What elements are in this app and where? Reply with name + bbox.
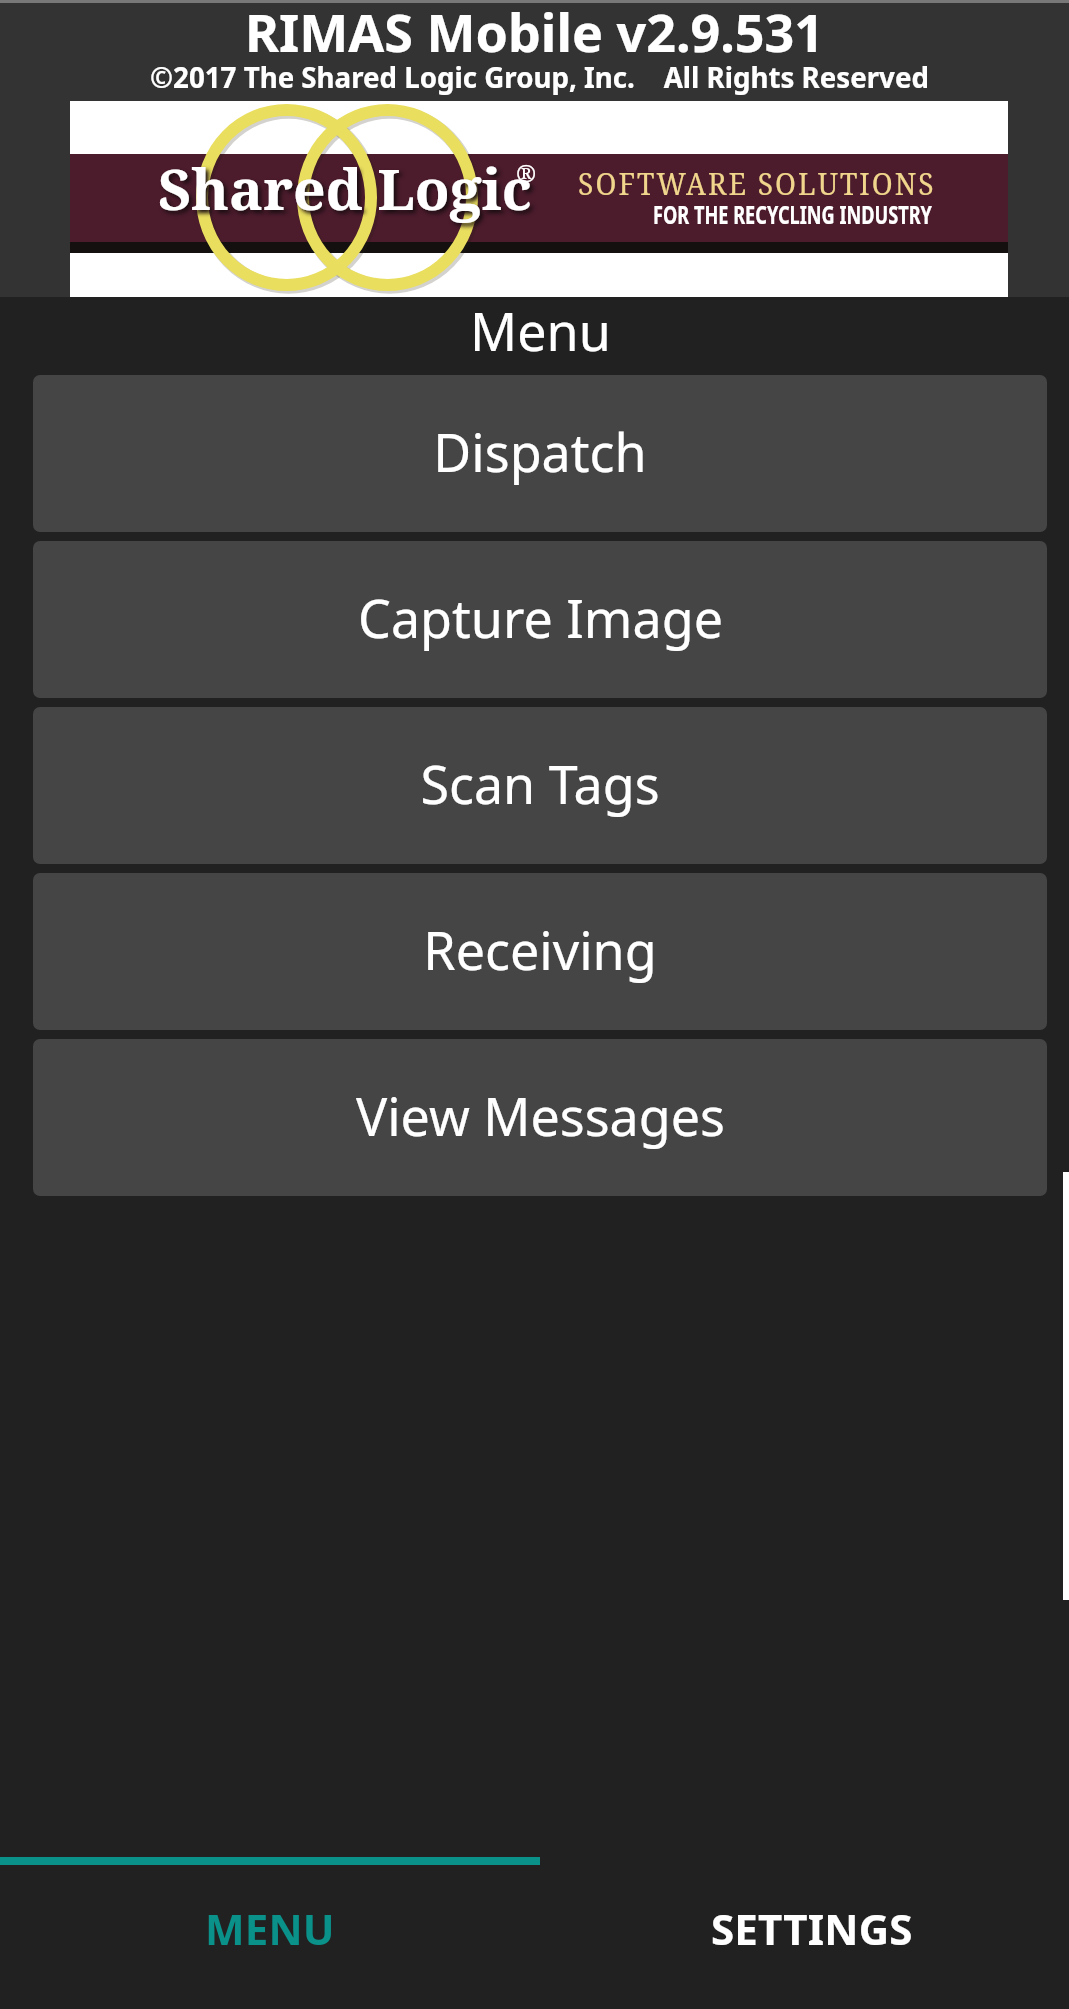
button[interactable]: Receiving: [33, 873, 1047, 1030]
button[interactable]: Dispatch: [33, 375, 1047, 532]
staticText: Shared Logic: [158, 149, 532, 227]
staticText: SETTINGS: [711, 1900, 913, 1957]
staticText: FOR THE RECYCLING INDUSTRY: [653, 197, 932, 231]
staticText: Menu: [6, 295, 1069, 366]
button[interactable]: SETTINGS: [540, 1865, 1069, 2009]
staticText: SOFTWARE SOLUTIONS: [578, 163, 936, 204]
staticText: MENU: [205, 1900, 335, 1957]
staticText: RIMAS Mobile v2.9.531: [0, 0, 1069, 67]
staticText: Dispatch: [433, 416, 647, 487]
other: Shared Logic logo banner: [70, 101, 1008, 297]
staticText: ©2017 The Shared Logic Group, Inc. All R…: [5, 58, 1069, 96]
button[interactable]: Scan Tags: [33, 707, 1047, 864]
staticText: View Messages: [356, 1080, 725, 1151]
staticText: Receiving: [423, 914, 657, 985]
staticText: Capture Image: [358, 582, 723, 653]
button[interactable]: Capture Image: [33, 541, 1047, 698]
button[interactable]: MENU: [0, 1865, 540, 2009]
button[interactable]: View Messages: [33, 1039, 1047, 1196]
staticText: ®: [516, 156, 537, 189]
staticText: Scan Tags: [420, 748, 660, 819]
